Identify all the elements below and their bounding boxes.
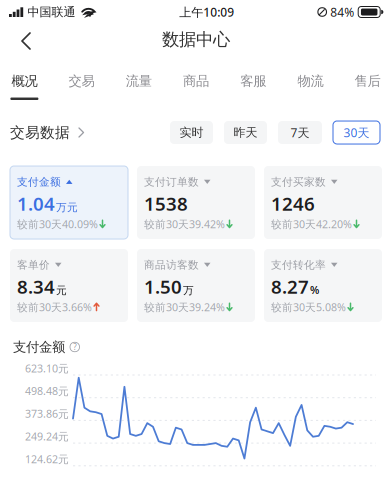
button[interactable]: 7天	[278, 121, 322, 144]
button[interactable]: 实时	[170, 121, 213, 144]
button[interactable]: 昨天	[224, 121, 267, 144]
staticText: 物流	[297, 73, 323, 89]
button[interactable]: 支付买家数	[264, 166, 382, 239]
staticText: 售后	[355, 73, 381, 89]
button[interactable]: 商品访客数	[137, 249, 255, 322]
staticText: 124.62元	[25, 452, 69, 466]
button[interactable]: 支付金额	[10, 166, 128, 239]
button[interactable]: 30天	[333, 121, 380, 144]
staticText: 1538	[144, 191, 188, 216]
staticText: 1246	[271, 191, 315, 216]
staticText: 商品访客数	[144, 258, 199, 271]
staticText: 上午10:09	[179, 4, 234, 20]
staticText: 交易	[69, 73, 95, 89]
button[interactable]: 客单价	[10, 249, 128, 322]
staticText: 支付转化率	[271, 258, 326, 271]
staticText: 中国联通	[27, 5, 75, 19]
staticText: 万	[183, 284, 194, 297]
button[interactable]: 客服	[226, 58, 280, 104]
staticText: 昨天	[233, 125, 257, 140]
staticText: 支付订单数	[144, 175, 199, 188]
button[interactable]: 售后	[341, 58, 392, 104]
staticText: 客单价	[17, 258, 50, 271]
staticText: 249.24元	[25, 429, 69, 443]
staticText: ?	[73, 342, 76, 352]
staticText: 万元	[56, 201, 78, 214]
staticText: 373.86元	[25, 407, 69, 421]
staticText: 支付金额	[17, 175, 61, 188]
staticText: 交易数据	[10, 123, 70, 141]
staticText: 较前30天3.66%	[17, 300, 92, 314]
button[interactable]: 流量	[112, 58, 166, 104]
staticText: 较前30天39.24%	[144, 300, 225, 314]
staticText: 客服	[240, 73, 266, 89]
staticText: 较前30天40.09%	[17, 217, 98, 231]
staticText: 元	[56, 284, 67, 297]
button[interactable]: 交易数据	[10, 123, 85, 141]
staticText: 623.10元	[25, 361, 69, 375]
staticText: 支付金额	[13, 339, 65, 355]
button[interactable]: 支付转化率	[264, 249, 382, 322]
staticText: 8.34	[17, 274, 55, 299]
staticText: 数据中心	[162, 29, 230, 50]
staticText: 商品	[183, 73, 209, 89]
staticText: 1.04	[17, 191, 55, 216]
staticText: %	[310, 283, 319, 297]
staticText: 实时	[179, 125, 203, 140]
button[interactable]: 交易	[55, 58, 109, 104]
staticText: 84%	[330, 4, 354, 20]
button[interactable]: Back	[10, 26, 42, 56]
button[interactable]: 商品	[169, 58, 223, 104]
staticText: 较前30天39.42%	[144, 217, 225, 231]
staticText: 概况	[11, 73, 37, 89]
staticText: 较前30天5.08%	[271, 300, 346, 314]
staticText: 1.50	[144, 274, 182, 299]
staticText: 较前30天42.20%	[271, 217, 352, 231]
button[interactable]: 物流	[283, 58, 337, 104]
staticText: 30天	[343, 124, 369, 140]
button[interactable]: 支付订单数	[137, 166, 255, 239]
staticText: 7天	[290, 124, 309, 140]
staticText: 流量	[126, 73, 152, 89]
staticText: 8.27	[271, 274, 309, 299]
button[interactable]: 概况	[0, 58, 51, 104]
staticText: 支付买家数	[271, 175, 326, 188]
staticText: 498.48元	[25, 384, 69, 398]
